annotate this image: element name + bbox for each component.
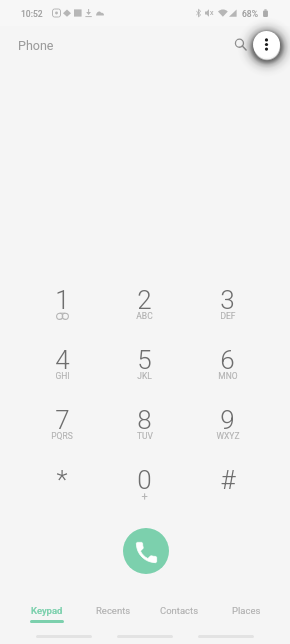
button[interactable]: Keypad <box>14 600 80 628</box>
staticText: Recents <box>96 605 131 616</box>
staticText: * <box>56 465 68 495</box>
button[interactable]: Search <box>229 33 251 55</box>
staticText: Phone <box>18 38 54 53</box>
staticText: 10:52 <box>21 9 43 19</box>
staticText: ABC <box>136 311 153 321</box>
staticText: Places <box>232 605 261 616</box>
staticText: Keypad <box>31 605 63 616</box>
button[interactable]: # <box>186 465 269 525</box>
staticText: 3 <box>220 285 235 315</box>
button[interactable]: 4 <box>21 345 103 405</box>
button[interactable]: 1 <box>21 285 103 345</box>
staticText: # <box>220 465 236 495</box>
staticText: + <box>141 490 148 503</box>
button[interactable]: More options <box>253 31 280 58</box>
button[interactable]: Call <box>123 528 169 574</box>
staticText: JKL <box>137 371 152 381</box>
staticText: DEF <box>220 311 236 321</box>
button[interactable]: 9 <box>186 405 269 465</box>
button[interactable]: 2 <box>103 285 186 345</box>
button[interactable]: 5 <box>103 345 186 405</box>
button[interactable]: 8 <box>103 405 186 465</box>
button[interactable]: 3 <box>186 285 269 345</box>
staticText: 0 <box>137 465 152 495</box>
staticText: 8 <box>137 405 152 435</box>
staticText: 1 <box>55 285 70 315</box>
button[interactable]: Recents <box>80 600 146 628</box>
staticText: WXYZ <box>216 431 240 441</box>
button[interactable]: * <box>21 465 103 525</box>
staticText: 68% <box>242 9 258 19</box>
staticText: 2 <box>137 285 152 315</box>
staticText: 4 <box>55 345 70 375</box>
button[interactable]: Places <box>213 600 280 628</box>
staticText: TUV <box>137 431 153 441</box>
staticText: PQRS <box>51 431 73 441</box>
staticText: Contacts <box>160 605 199 616</box>
button[interactable]: 0 <box>103 465 186 525</box>
staticText: 6 <box>220 345 235 375</box>
button[interactable]: Contacts <box>146 600 213 628</box>
button[interactable]: 7 <box>21 405 103 465</box>
staticText: 5 <box>137 345 152 375</box>
staticText: 9 <box>220 405 235 435</box>
staticText: GHI <box>55 371 70 381</box>
staticText: MNO <box>218 371 238 381</box>
button[interactable]: 6 <box>186 345 269 405</box>
staticText: 7 <box>55 405 70 435</box>
